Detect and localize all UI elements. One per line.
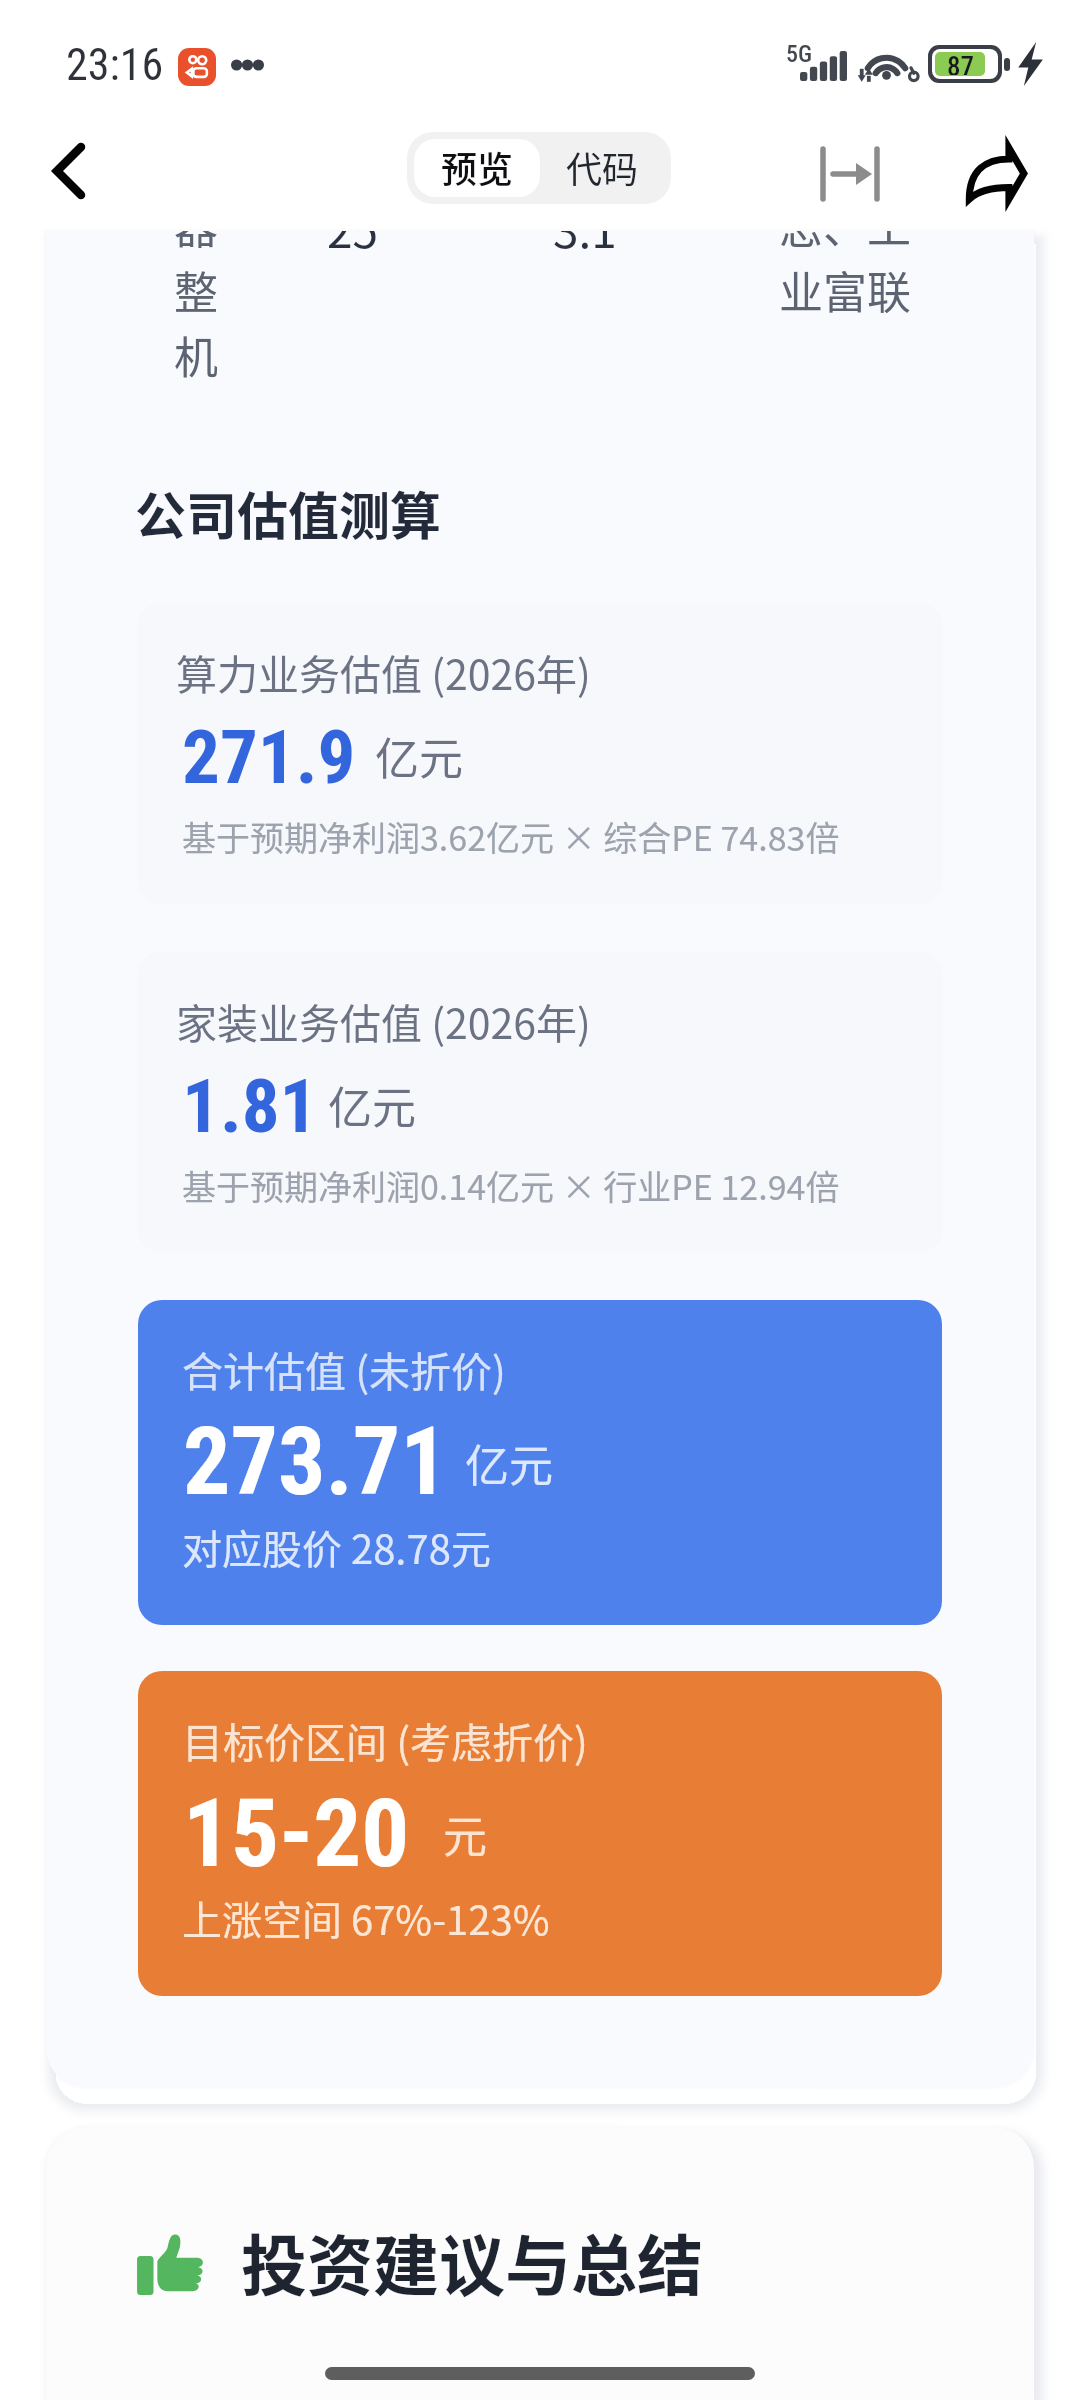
staticText: 87 [947,52,974,75]
staticText: 公司估值测算 [135,476,442,550]
button[interactable]: 家装业务估值 (2026年) [137,952,943,1252]
staticText: 忌、工 业富联 [779,231,911,322]
button[interactable]: 预览 [414,139,540,197]
staticText: 25 [327,231,379,262]
staticText: 1.81 [182,1062,318,1150]
button[interactable]: 合计估值 (未折价) [138,1300,942,1625]
staticText: 基于预期净利润3.62亿元 × 综合PE 74.83倍 [182,812,840,861]
staticText: 对应股价 28.78元 [182,1518,491,1576]
staticText: 目标价区间 (考虑折价) [182,1710,588,1769]
staticText: 3.1 [553,231,617,262]
staticText: 预览 [441,141,514,193]
staticText: 合计估值 (未折价) [182,1339,506,1398]
staticText: 代码 [566,141,639,193]
button[interactable]: 算力业务估值 (2026年) [137,603,943,904]
staticText: 15-20 [183,1778,410,1889]
staticText: 算力业务估值 (2026年) [176,642,591,701]
staticText: 5G [786,40,813,68]
button[interactable]: 目标价区间 (考虑折价) [138,1671,942,1996]
staticText: 273.71 [183,1407,448,1517]
staticText: 投资建议与总结 [241,2213,703,2309]
button[interactable]: 代码 [540,139,664,197]
staticText: 家装业务估值 (2026年) [176,991,591,1050]
staticText: 亿元 [328,1073,416,1137]
staticText: 器 整 机 [174,231,218,387]
staticText: 23:16 [66,39,164,91]
button[interactable]: Fit width [806,130,894,218]
button[interactable]: Back [25,127,113,215]
staticText: 亿元 [375,724,463,788]
button[interactable]: Share [952,129,1040,217]
staticText: 基于预期净利润0.14亿元 × 行业PE 12.94倍 [182,1161,840,1210]
staticText: 271.9 [182,713,356,801]
staticText: 亿元 [465,1431,553,1495]
staticText: 元 [443,1802,487,1866]
staticText: 上涨空间 67%-123% [182,1889,550,1947]
